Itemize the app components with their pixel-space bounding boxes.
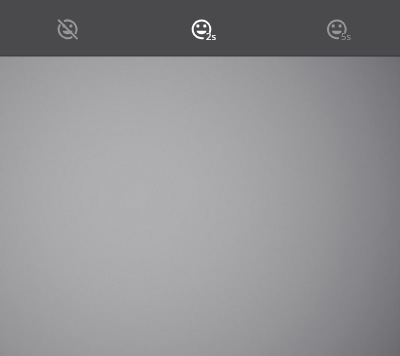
button[interactable]: 5 second timer	[312, 4, 360, 52]
staticText: 5s	[341, 30, 351, 43]
staticText: 2s	[206, 30, 216, 43]
button[interactable]: Timer off	[43, 4, 91, 52]
button[interactable]: 2 second timer	[177, 4, 225, 52]
